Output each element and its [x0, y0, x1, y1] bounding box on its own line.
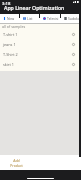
- button[interactable]: List: [20, 14, 39, 23]
- button[interactable]: T-Shirt 2: [0, 49, 81, 59]
- staticText: T-shirt 1: [3, 32, 18, 37]
- button[interactable]: Now: [0, 14, 19, 23]
- staticText: Add: [13, 158, 20, 163]
- staticText: T-Shirt 2: [3, 52, 18, 57]
- staticText: skirt 1: [3, 62, 14, 67]
- staticText: Television: [47, 16, 60, 21]
- button[interactable]: skirt 1: [0, 59, 81, 69]
- staticText: 3:18: [2, 1, 11, 7]
- staticText: Sudoku: [68, 16, 80, 21]
- staticText: Now: [7, 16, 15, 21]
- button[interactable]: Add: [10, 158, 23, 168]
- staticText: App Linear Optimization: [4, 4, 65, 11]
- staticText: jeans 1: [3, 42, 16, 47]
- button[interactable]: Sudoku: [61, 14, 81, 23]
- button[interactable]: T-shirt 1: [0, 29, 81, 39]
- button[interactable]: jeans 1: [0, 39, 81, 49]
- button[interactable]: Television: [40, 14, 60, 23]
- staticText: List: [27, 16, 33, 21]
- staticText: Product: [10, 163, 23, 168]
- staticText: all of samples: [2, 24, 26, 29]
